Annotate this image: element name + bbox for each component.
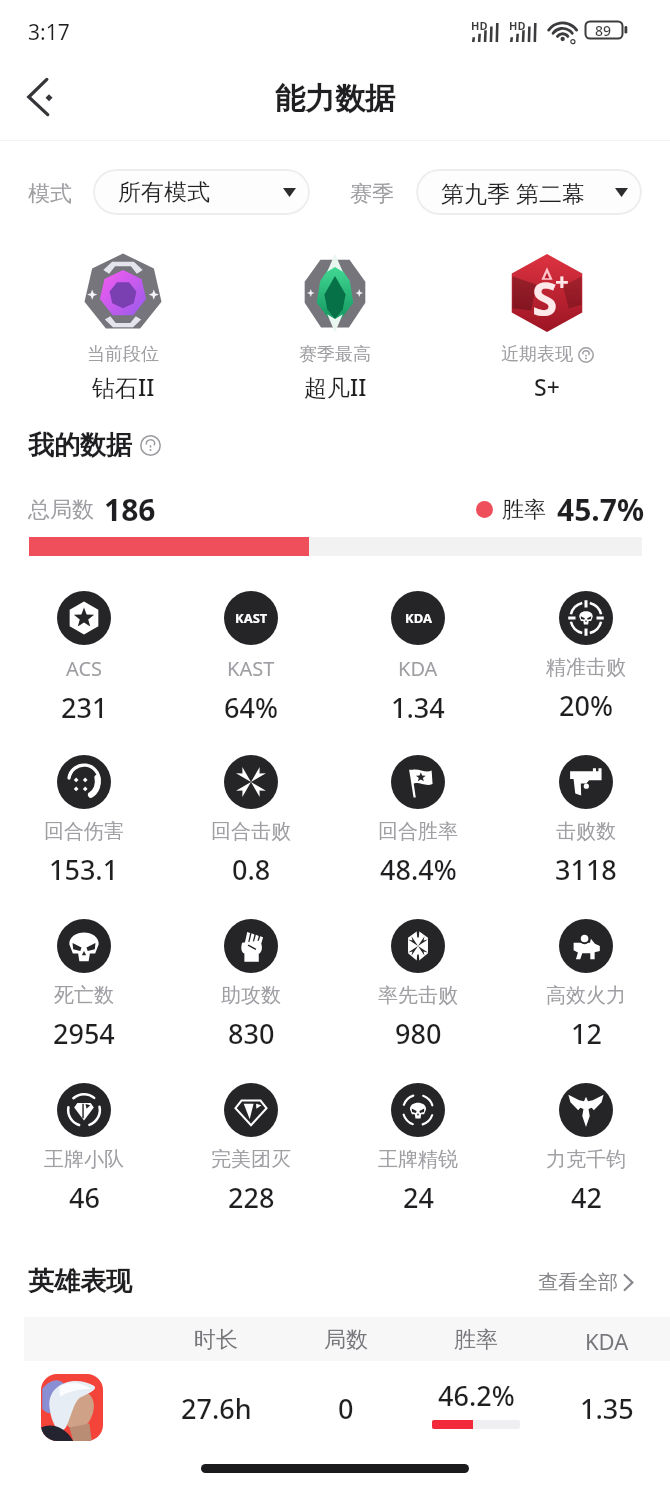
button[interactable]: 王牌精锐 — [335, 1083, 501, 1216]
button[interactable]: 王牌小队 — [1, 1083, 167, 1216]
staticText: 超凡II — [304, 371, 367, 402]
staticText: 击败数 — [556, 819, 616, 844]
button[interactable]: 精准击败 — [503, 591, 669, 724]
staticText: 赛季 — [350, 180, 394, 208]
staticText: 48.4% — [380, 851, 457, 888]
staticText: 89 — [595, 21, 612, 39]
staticText: 回合胜率 — [378, 819, 458, 844]
button[interactable]: 查看全部 — [538, 1270, 634, 1295]
staticText: HD — [509, 18, 526, 33]
staticText: 980 — [395, 1015, 442, 1052]
staticText: 我的数据 — [28, 429, 132, 462]
staticText: 0 — [338, 1390, 354, 1427]
staticText: S — [532, 267, 558, 330]
staticText: 3118 — [555, 851, 617, 888]
staticText: HD — [471, 18, 488, 33]
staticText: 228 — [228, 1179, 275, 1216]
staticText: 231 — [61, 689, 108, 726]
button[interactable]: 高效火力 — [503, 919, 669, 1052]
staticText: 回合击败 — [211, 819, 291, 844]
staticText: 回合伤害 — [44, 819, 124, 844]
staticText: 能力数据 — [275, 80, 395, 118]
staticText: ACS — [66, 655, 102, 682]
staticText: 153.1 — [49, 851, 119, 888]
staticText: 力克千钧 — [546, 1147, 626, 1172]
button[interactable]: Back — [10, 67, 70, 127]
staticText: 完美团灭 — [211, 1147, 291, 1172]
staticText: 当前段位 — [87, 343, 159, 366]
staticText: 20% — [559, 687, 613, 724]
staticText: 赛季最高 — [299, 343, 371, 366]
staticText: + — [555, 265, 569, 298]
staticText: 64% — [224, 689, 278, 726]
button[interactable]: 回合胜率 — [335, 755, 501, 888]
button[interactable]: 第九季 第二幕 — [416, 169, 642, 215]
staticText: KDA — [405, 609, 432, 627]
staticText: 精准击败 — [546, 655, 626, 680]
staticText: 第九季 第二幕 — [441, 177, 585, 208]
staticText: 总局数 — [28, 496, 94, 524]
staticText: 模式 — [28, 180, 72, 208]
staticText: 胜率 — [454, 1326, 498, 1354]
staticText: KAST — [227, 655, 275, 682]
staticText: 1.34 — [391, 689, 445, 726]
staticText: KDA — [398, 655, 438, 682]
staticText: KAST — [235, 609, 268, 627]
staticText: 时长 — [194, 1326, 238, 1354]
button[interactable]: KDA — [335, 591, 501, 726]
button[interactable]: 所有模式 — [93, 169, 310, 215]
staticText: 近期表现 — [501, 343, 573, 366]
staticText: 局数 — [324, 1326, 368, 1354]
staticText: 830 — [228, 1015, 275, 1052]
button[interactable] — [41, 1374, 103, 1441]
staticText: 王牌精锐 — [378, 1147, 458, 1172]
button[interactable]: 回合伤害 — [1, 755, 167, 888]
button[interactable]: ACS — [1, 591, 167, 726]
staticText: 46 — [69, 1179, 100, 1216]
button[interactable]: 率先击败 — [335, 919, 501, 1052]
staticText: 死亡数 — [54, 983, 114, 1008]
button[interactable]: 力克千钧 — [503, 1083, 669, 1216]
staticText: 所有模式 — [118, 178, 210, 207]
button[interactable]: KAST — [168, 591, 334, 726]
staticText: 钻石II — [92, 371, 155, 402]
staticText: S+ — [534, 371, 560, 402]
staticText: 12 — [571, 1015, 602, 1052]
button[interactable]: 完美团灭 — [168, 1083, 334, 1216]
staticText: 率先击败 — [378, 983, 458, 1008]
staticText: 186 — [104, 489, 156, 530]
button[interactable]: 击败数 — [503, 755, 669, 888]
staticText: KDA — [585, 1326, 629, 1356]
staticText: 0.8 — [232, 851, 271, 888]
button[interactable]: 助攻数 — [168, 919, 334, 1052]
staticText: 胜率 — [502, 496, 546, 524]
staticText: 助攻数 — [221, 983, 281, 1008]
staticText: 王牌小队 — [44, 1147, 124, 1172]
button[interactable]: 死亡数 — [1, 919, 167, 1052]
staticText: 2954 — [53, 1015, 115, 1052]
staticText: 27.6h — [181, 1390, 252, 1427]
staticText: 42 — [571, 1179, 602, 1216]
button[interactable]: 回合击败 — [168, 755, 334, 888]
staticText: 1.35 — [580, 1390, 634, 1427]
staticText: 46.2% — [438, 1377, 515, 1414]
staticText: 查看全部 — [538, 1270, 618, 1295]
staticText: 45.7% — [557, 489, 644, 530]
staticText: 高效火力 — [546, 983, 626, 1008]
staticText: 英雄表现 — [28, 1265, 132, 1298]
staticText: 24 — [403, 1179, 434, 1216]
staticText: 3:17 — [28, 18, 70, 47]
